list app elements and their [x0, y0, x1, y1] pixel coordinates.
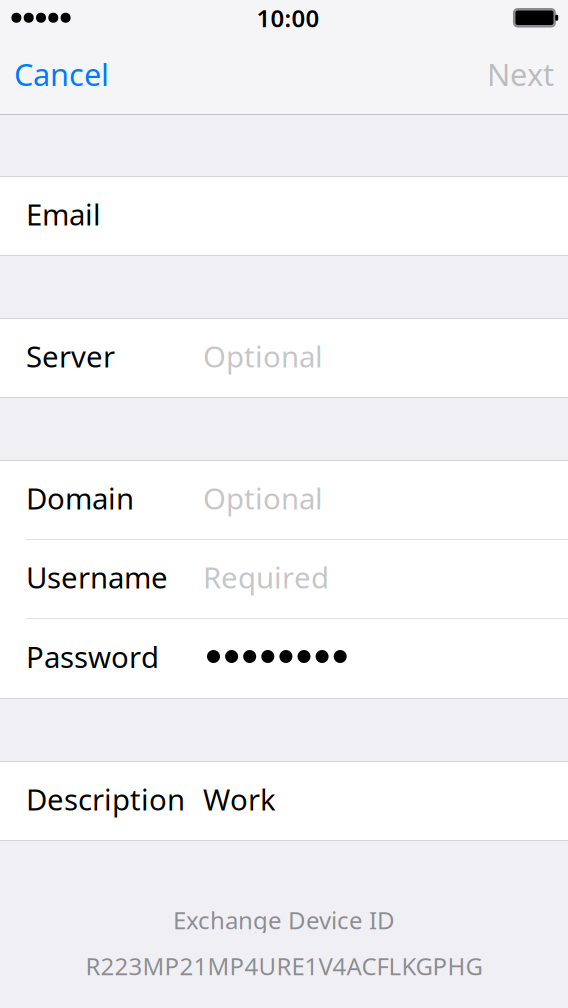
button[interactable]: Cancel: [0, 40, 123, 114]
button[interactable]: Domain: [0, 460, 568, 539]
staticText: Description: [26, 779, 185, 818]
staticText: Cancel: [14, 54, 109, 94]
staticText: Optional: [203, 336, 323, 375]
staticText: Username: [26, 557, 168, 596]
staticText: Password: [26, 637, 159, 676]
staticText: R223MP21MP4URE1V4ACFLKGPHG: [85, 950, 482, 982]
staticText: Domain: [26, 478, 134, 517]
button[interactable]: Username: [0, 539, 568, 618]
staticText: Next: [487, 54, 554, 94]
button[interactable]: Password: [0, 618, 568, 698]
staticText: Required: [203, 557, 329, 596]
staticText: Server: [26, 336, 115, 375]
button[interactable]: Description: [0, 761, 568, 840]
staticText: Optional: [203, 478, 323, 517]
staticText: Work: [203, 779, 276, 818]
button[interactable]: Server: [0, 318, 568, 397]
staticText: Exchange Device ID: [173, 904, 395, 936]
button[interactable]: Email: [0, 176, 568, 255]
button[interactable]: Next: [473, 40, 568, 114]
staticText: Email: [26, 194, 101, 233]
staticText: 10:00: [256, 2, 319, 34]
